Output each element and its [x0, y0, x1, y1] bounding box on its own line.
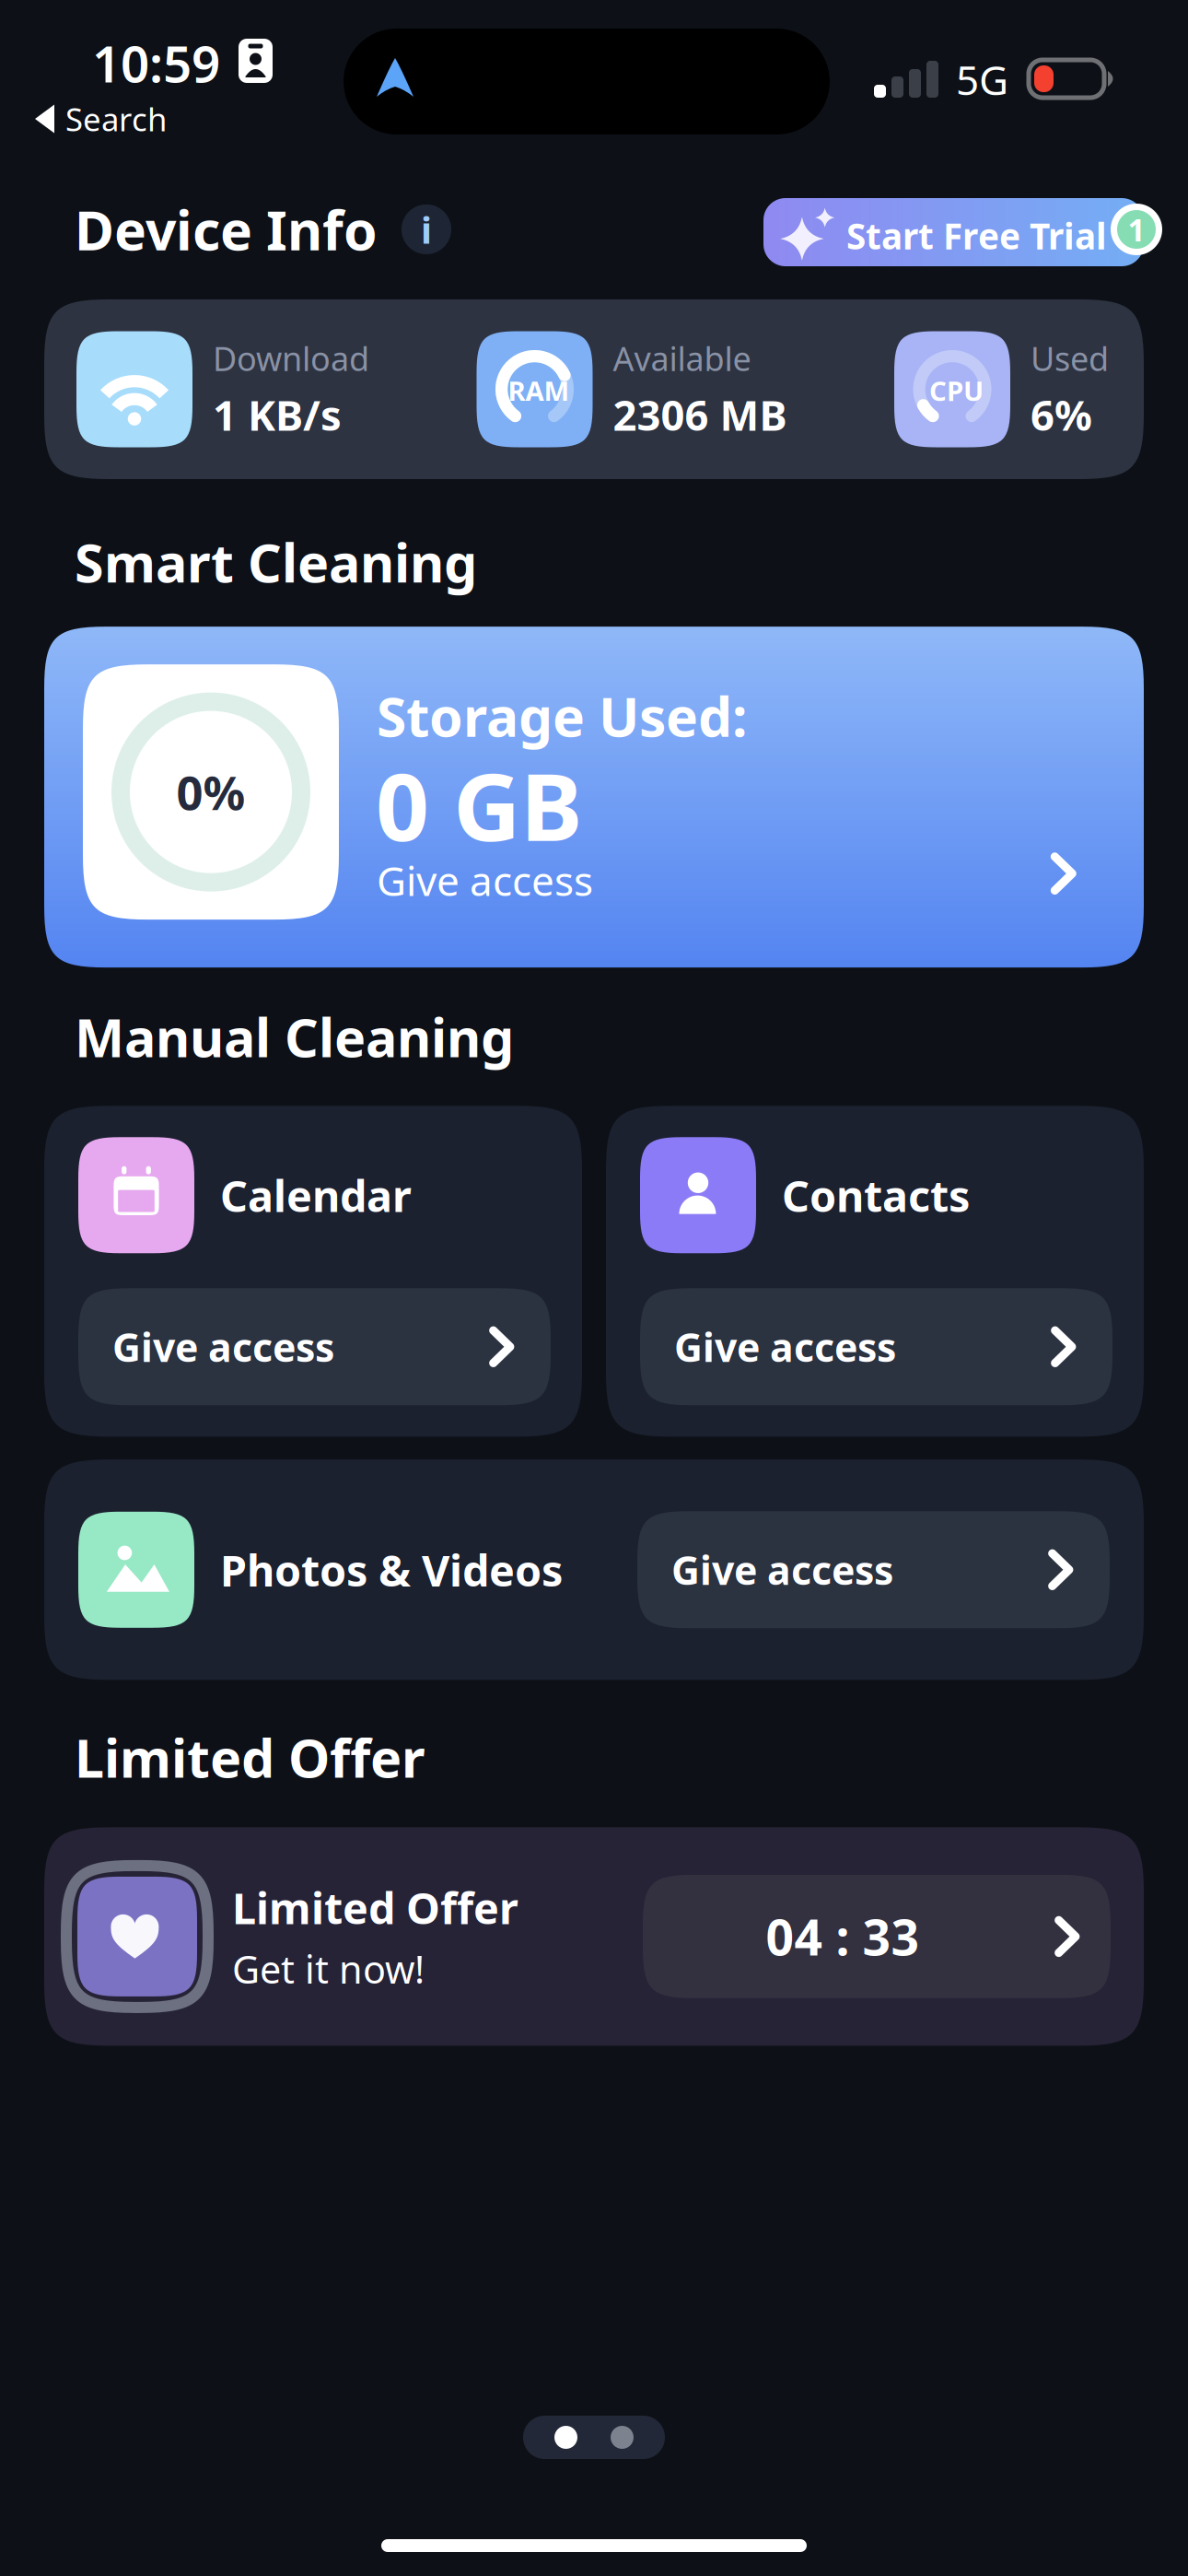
button[interactable]: Give access	[78, 1288, 551, 1405]
staticText: Limited Offer	[232, 1879, 518, 1936]
staticText: Smart Cleaning	[75, 527, 477, 597]
button[interactable]: Calendar	[44, 1106, 582, 1437]
button[interactable]: 0%	[44, 627, 1144, 967]
staticText: i	[421, 205, 432, 254]
staticText: Used	[1031, 336, 1109, 380]
staticText: Contacts	[782, 1167, 970, 1224]
staticText: Give access	[671, 1544, 893, 1596]
staticText: CPU	[929, 372, 983, 408]
button[interactable]: Give access	[637, 1511, 1110, 1628]
staticText: Start Free Trial	[846, 212, 1107, 259]
staticText: Download	[213, 336, 369, 380]
staticText: 1 KB/s	[213, 387, 342, 442]
button[interactable]: Photos & Videos	[44, 1460, 1144, 1680]
staticText: Photos & Videos	[220, 1541, 563, 1598]
staticText: Limited Offer	[75, 1722, 425, 1792]
button[interactable]: Start Free Trial	[763, 198, 1144, 266]
button[interactable]: Search	[35, 98, 167, 140]
staticText: Calendar	[220, 1167, 412, 1224]
button[interactable]: Contacts	[606, 1106, 1144, 1437]
staticText: Manual Cleaning	[75, 1002, 514, 1072]
button[interactable]: Info	[402, 205, 451, 254]
staticText: Available	[613, 336, 751, 380]
staticText: Storage Used:	[377, 680, 747, 752]
staticText: Search	[65, 98, 167, 140]
staticText: 10:59	[92, 29, 220, 96]
staticText: 0%	[176, 761, 245, 823]
button[interactable]: Give access	[640, 1288, 1112, 1405]
staticText: 5G	[956, 53, 1008, 106]
staticText: Get it now!	[232, 1943, 425, 1994]
staticText: RAM	[508, 372, 570, 408]
staticText: 6%	[1031, 387, 1092, 442]
staticText: 0 GB	[376, 743, 582, 867]
button[interactable]: Limited Offer	[44, 1827, 1144, 2046]
staticText: Give access	[112, 1321, 334, 1373]
staticText: 2306 MB	[613, 387, 787, 442]
staticText: Device Info	[75, 193, 378, 265]
staticText: Give access	[674, 1321, 896, 1373]
staticText: Give access	[377, 853, 593, 907]
staticText: 1	[1128, 209, 1145, 250]
staticText: 04 : 33	[766, 1904, 920, 1969]
